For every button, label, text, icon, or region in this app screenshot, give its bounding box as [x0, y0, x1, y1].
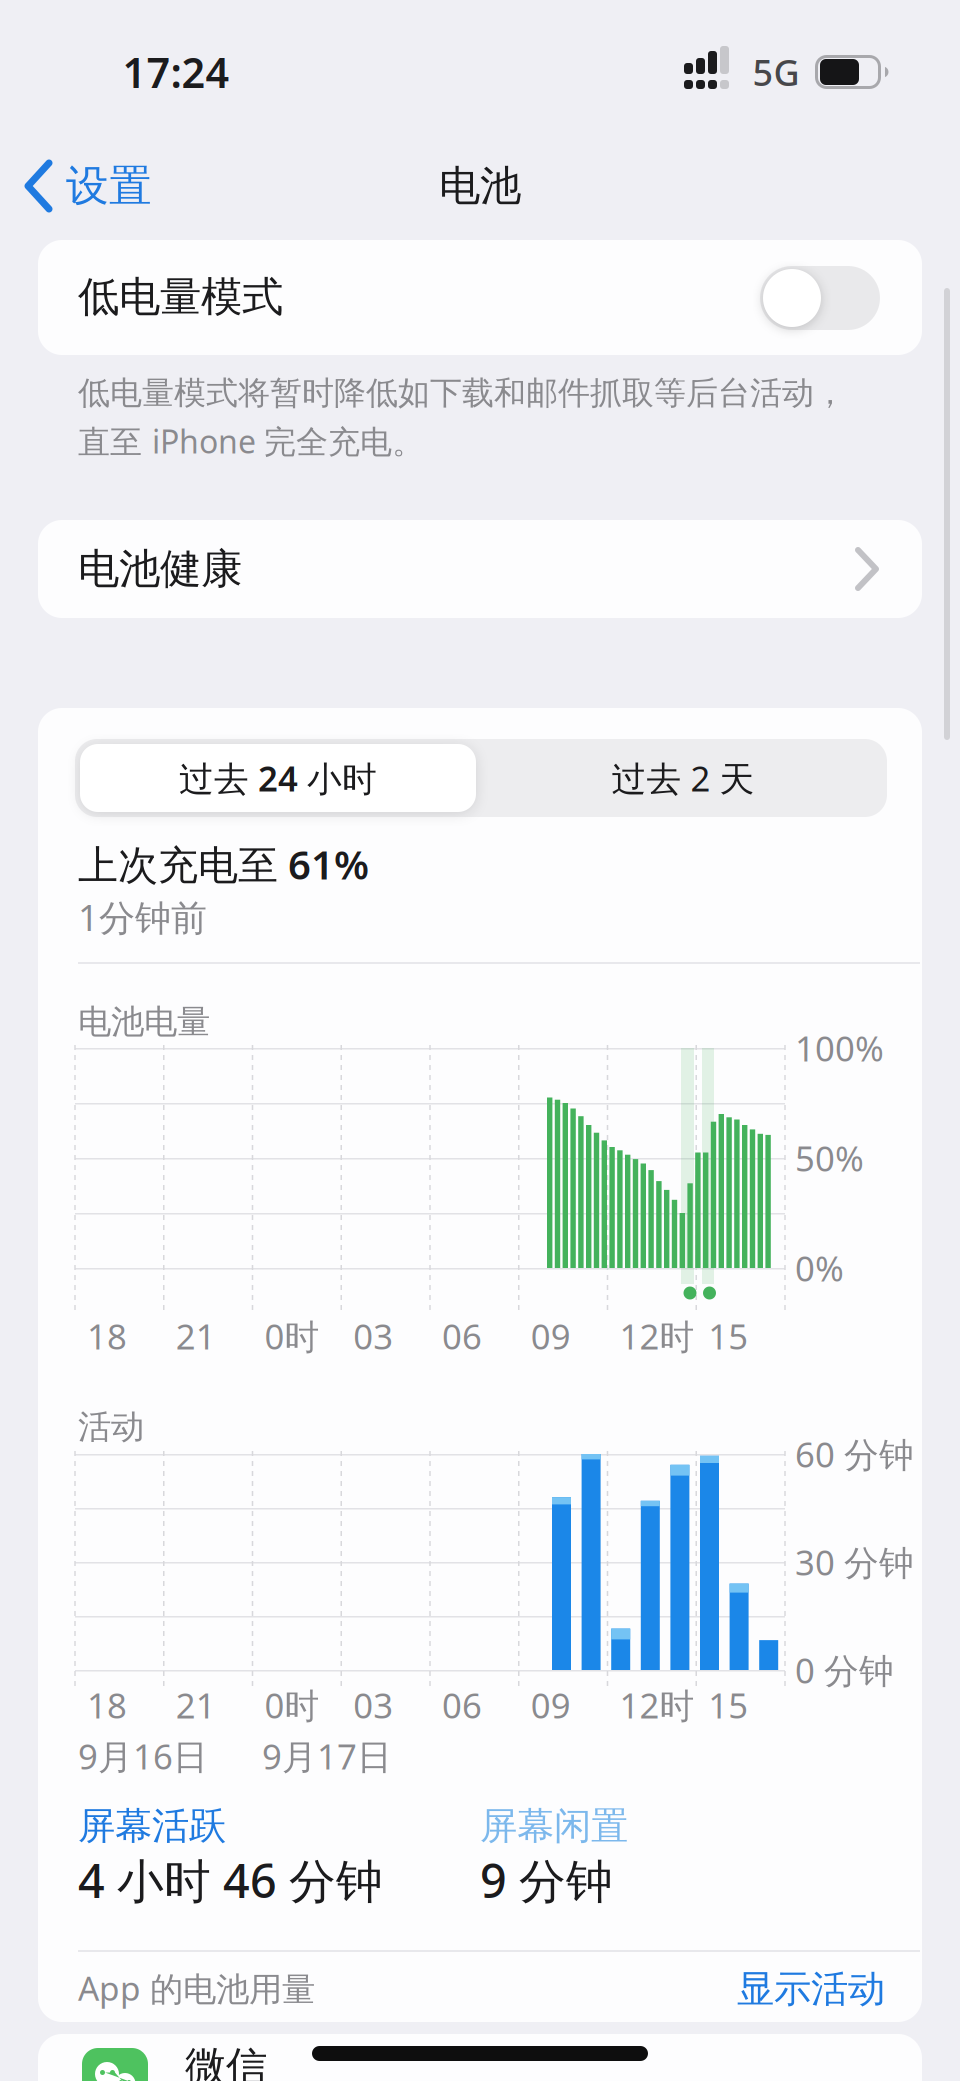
staticText: 电池 [439, 161, 521, 211]
staticText: 显示活动 [737, 1966, 885, 2012]
button[interactable] [760, 266, 880, 330]
staticText: 过去 2 天 [611, 755, 754, 801]
button[interactable]: 显示活动 [585, 1958, 885, 2018]
staticText: 4 小时 46 分钟 [78, 1849, 383, 1911]
staticText: 设置 [66, 160, 152, 212]
staticText: 06 [442, 1313, 482, 1359]
staticText: 微信 [185, 2042, 267, 2081]
staticText: 06 [442, 1682, 482, 1728]
staticText: 17:24 [122, 45, 229, 99]
staticText: 03 [353, 1313, 393, 1359]
button[interactable]: 设置 [20, 132, 230, 240]
staticText: 直至 iPhone 完全充电。 [78, 420, 424, 462]
staticText: 21 [176, 1682, 216, 1728]
staticText: 30 分钟 [795, 1539, 914, 1585]
staticText: 18 [87, 1682, 127, 1728]
staticText: 上次充电至 61% [78, 837, 369, 890]
staticText: 21 [176, 1313, 216, 1359]
staticText: 09 [531, 1313, 571, 1359]
staticText: 屏幕闲置 [480, 1803, 628, 1849]
staticText: 60 分钟 [795, 1431, 914, 1477]
staticText: 0时 [264, 1682, 319, 1728]
staticText: 15 [708, 1313, 748, 1359]
staticText: 电池健康 [78, 544, 242, 594]
staticText: 09 [531, 1682, 571, 1728]
staticText: 9月16日 [78, 1733, 208, 1779]
staticText: 活动 [78, 1406, 144, 1447]
staticText: 50% [795, 1135, 864, 1181]
button[interactable]: 微信 [38, 2034, 922, 2081]
staticText: 12时 [619, 1313, 694, 1359]
staticText: App 的电池用量 [78, 1966, 315, 2010]
staticText: 12时 [619, 1682, 694, 1728]
staticText: 过去 24 小时 [179, 755, 377, 801]
staticText: 15 [708, 1682, 748, 1728]
staticText: 低电量模式将暂时降低如下载和邮件抓取等后台活动， [78, 373, 846, 413]
button[interactable]: 过去 2 天 [485, 744, 881, 812]
staticText: 屏幕活跃 [78, 1803, 226, 1849]
staticText: 9 分钟 [480, 1849, 613, 1911]
staticText: 0时 [264, 1313, 319, 1359]
staticText: 100% [795, 1025, 884, 1071]
staticText: 03 [353, 1682, 393, 1728]
staticText: 5G [752, 48, 799, 96]
staticText: 低电量模式 [78, 272, 283, 322]
staticText: 9月17日 [262, 1733, 392, 1779]
staticText: 0 分钟 [795, 1647, 894, 1693]
staticText: 18 [87, 1313, 127, 1359]
button[interactable]: 过去 24 小时 [80, 744, 476, 812]
staticText: 电池电量 [78, 1001, 210, 1042]
staticText: 0% [795, 1245, 844, 1291]
staticText: 1分钟前 [78, 893, 207, 941]
button[interactable]: 电池健康 [38, 520, 922, 618]
